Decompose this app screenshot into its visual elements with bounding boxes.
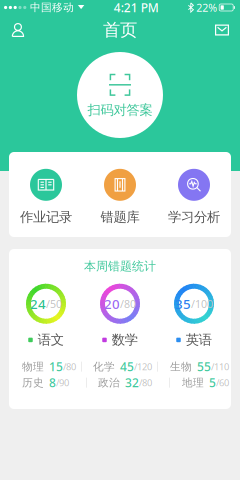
staticText: 错题库 <box>100 209 139 225</box>
staticText: 首页 <box>103 19 137 41</box>
staticText: 15 <box>49 359 63 374</box>
staticText: 生物 <box>170 360 192 373</box>
staticText: 历史 <box>22 376 44 389</box>
staticText: /80 <box>63 360 76 373</box>
staticText: 学习分析 <box>168 209 220 225</box>
staticText: 地理 <box>182 376 204 389</box>
button[interactable]: 作业记录 <box>9 169 83 225</box>
staticText: 作业记录 <box>20 209 72 225</box>
button[interactable]: 扫码对答案 <box>77 52 163 138</box>
staticText: 24 <box>30 295 46 313</box>
staticText: 数学 <box>112 332 138 348</box>
staticText: 22% <box>196 0 217 15</box>
staticText: 化学 <box>93 360 115 373</box>
staticText: 扫码对答案 <box>87 102 152 118</box>
button[interactable]: Profile <box>0 15 36 45</box>
staticText: /90 <box>56 376 69 389</box>
staticText: /100 <box>191 297 213 311</box>
staticText: 8 <box>49 375 56 390</box>
staticText: /80 <box>139 376 152 389</box>
staticText: /80 <box>120 297 136 311</box>
staticText: 20 <box>104 295 120 313</box>
staticText: 政治 <box>98 376 120 389</box>
staticText: 45 <box>120 359 134 374</box>
staticText: /110 <box>211 360 229 373</box>
staticText: 语文 <box>38 332 64 348</box>
staticText: 32 <box>125 375 139 390</box>
button[interactable]: Messages <box>204 15 240 45</box>
staticText: /120 <box>134 360 152 373</box>
staticText: 4:21 PM <box>114 0 159 15</box>
staticText: /60 <box>216 376 229 389</box>
staticText: 英语 <box>186 332 212 348</box>
staticText: 本周错题统计 <box>84 259 156 274</box>
staticText: 中国移动 <box>30 1 74 14</box>
staticText: 5 <box>209 375 216 390</box>
staticText: 55 <box>197 359 211 374</box>
button[interactable]: 错题库 <box>83 169 157 225</box>
staticText: 物理 <box>22 360 44 373</box>
button[interactable]: 学习分析 <box>157 169 231 225</box>
staticText: /50 <box>46 297 62 311</box>
staticText: 35 <box>175 295 191 313</box>
